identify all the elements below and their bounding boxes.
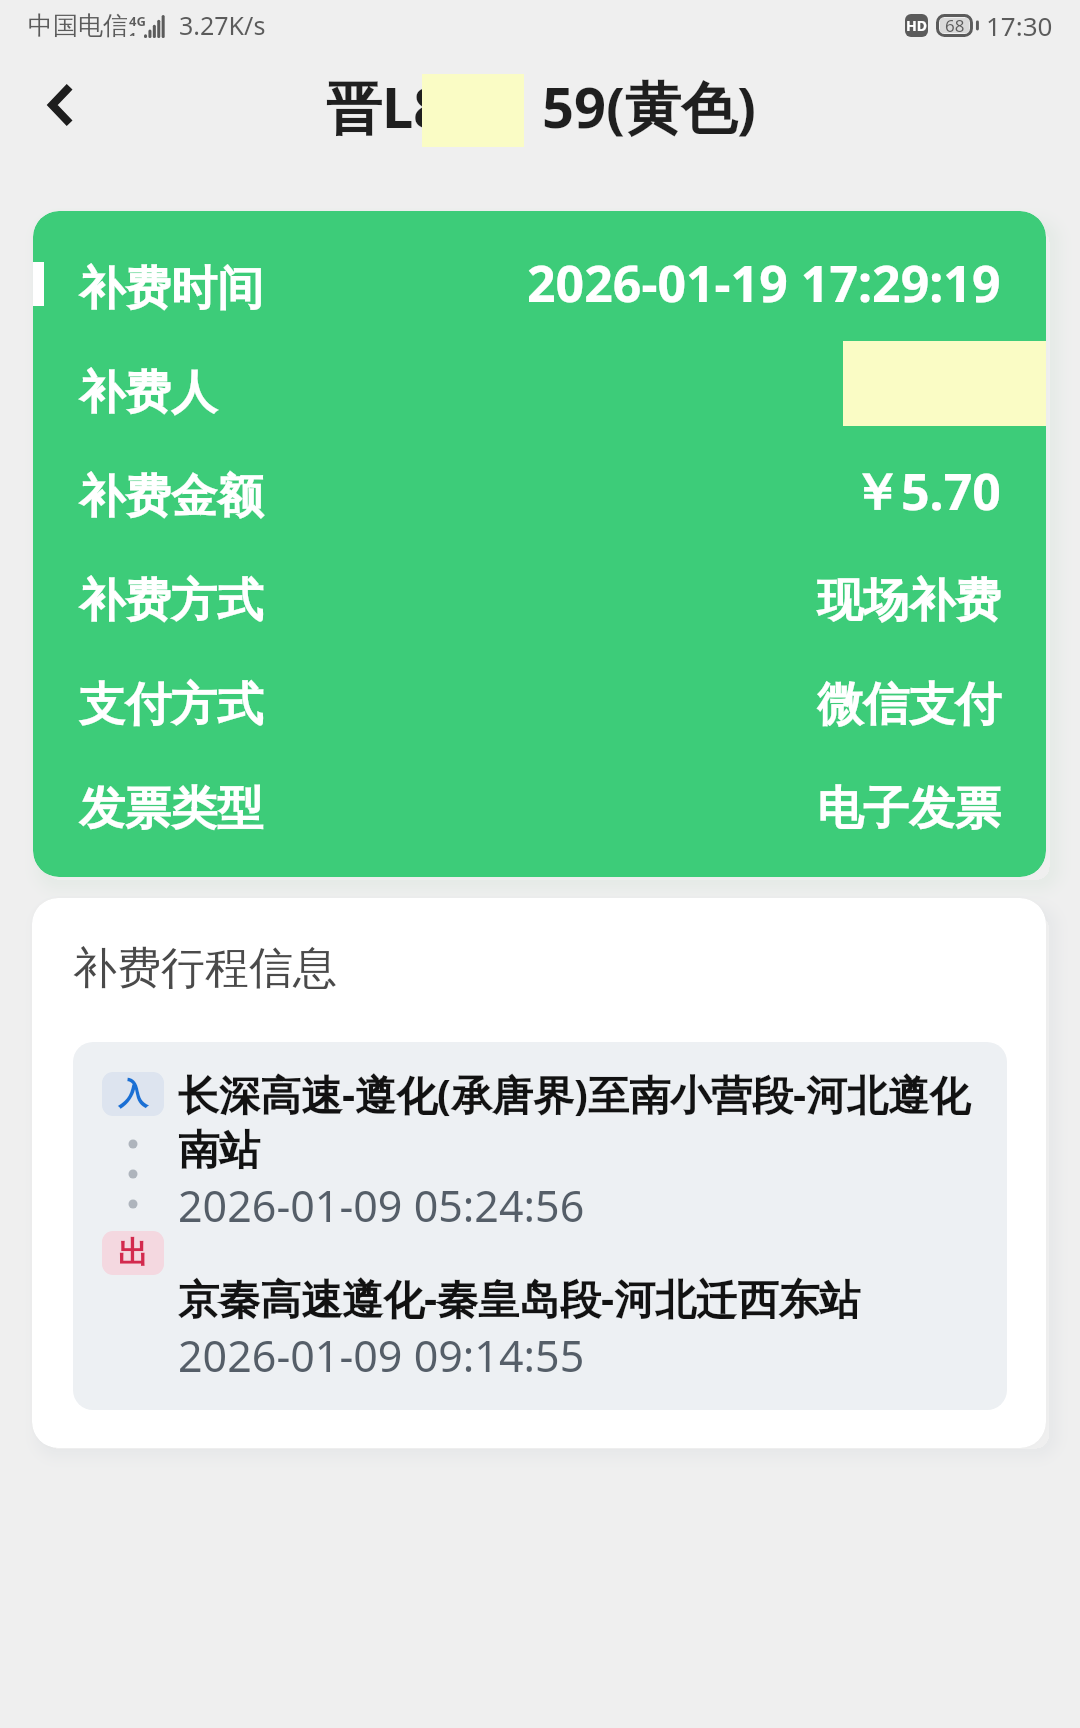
staticText: 补费金额 [79,468,263,526]
staticText: 4G [129,12,146,30]
staticText: 59(黄色) [542,68,757,144]
staticText: 中国电信 [28,10,128,41]
staticText: 1 [129,28,137,36]
staticText: 补费时间 [79,260,263,318]
staticText: 17:30 [986,8,1053,43]
staticText: 2026-01-19 17:29:19 [527,249,1001,317]
button[interactable]: 入 [73,1042,1007,1410]
staticText: 发票类型 [79,780,263,838]
staticText: 支付方式 [79,676,263,734]
staticText: 3.27K/s [179,8,266,42]
staticText: 补费方式 [79,572,263,630]
staticText: 长深高速-遵化(承唐界)至南小营段-河北遵化南站 [178,1066,983,1176]
staticText: 京秦高速遵化-秦皇岛段-河北迁西东站 [178,1270,861,1326]
staticText: 微信支付 [817,676,1001,734]
staticText: 入 [118,1075,148,1113]
staticText: 2026-01-09 09:14:55 [178,1326,585,1385]
staticText: 68 [945,14,965,37]
staticText: 2026-01-09 05:24:56 [178,1176,585,1235]
staticText: 电子发票 [817,780,1001,838]
staticText: ￥5.70 [851,457,1001,525]
staticText: HD [906,16,927,35]
staticText: 补费人 [79,364,217,422]
staticText: 现场补费 [817,572,1001,630]
staticText: 出 [118,1234,148,1272]
staticText: 补费行程信息 [73,941,337,996]
staticText: 晋L8 [326,68,446,144]
button[interactable]: Back [18,65,98,145]
